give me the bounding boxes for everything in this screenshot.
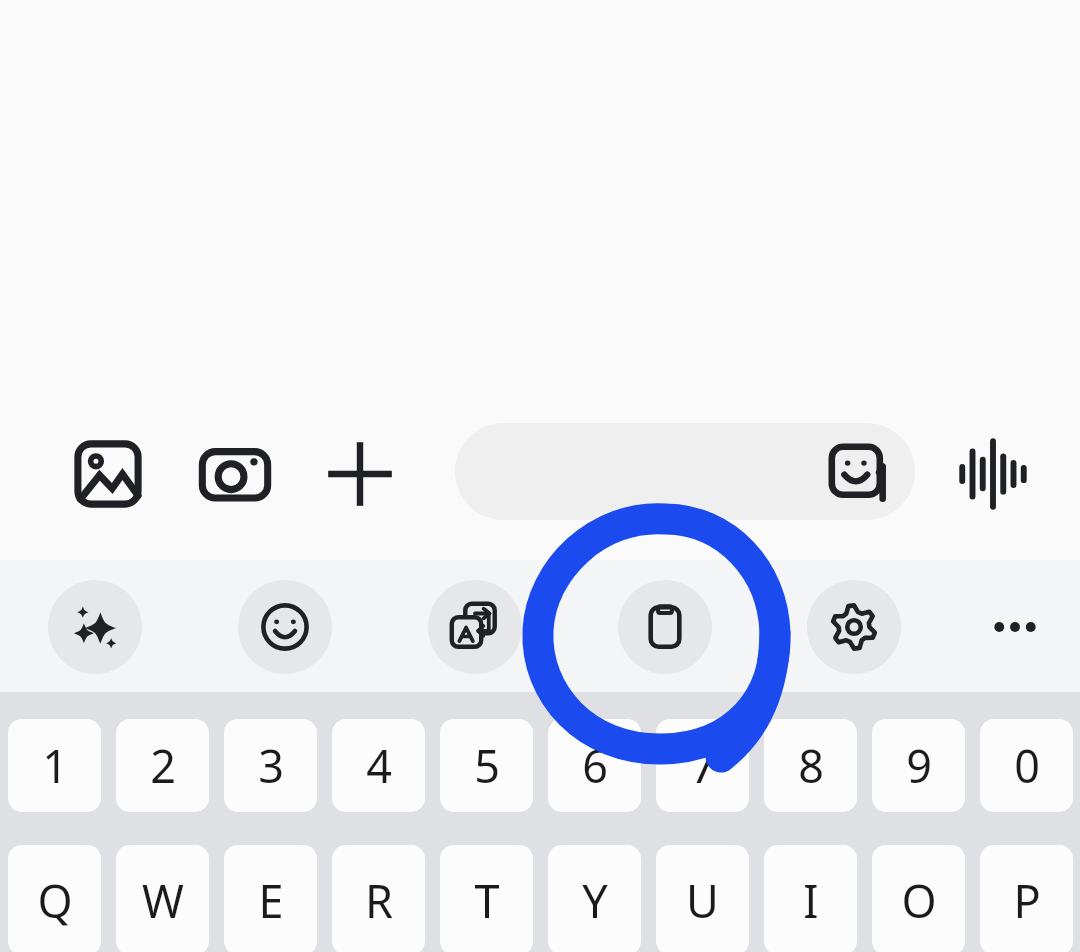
staticText: 9 <box>906 735 932 796</box>
button[interactable]: U <box>656 845 749 952</box>
button[interactable]: O <box>872 845 965 952</box>
button[interactable]: 2 <box>116 719 209 812</box>
button[interactable]: Settings <box>807 580 901 674</box>
button[interactable]: AI suggestions <box>48 580 142 674</box>
staticText: 6 <box>582 735 608 796</box>
button[interactable]: 9 <box>872 719 965 812</box>
staticText: I <box>803 870 819 931</box>
button[interactable]: Emoji <box>238 580 332 674</box>
staticText: 5 <box>474 735 500 796</box>
button[interactable]: T <box>440 845 533 952</box>
staticText: Q <box>37 870 73 931</box>
staticText: T <box>474 870 500 931</box>
button[interactable]: 3 <box>224 719 317 812</box>
button[interactable]: Translate <box>428 580 522 674</box>
button[interactable]: More options <box>970 582 1060 672</box>
button[interactable]: 7 <box>656 719 749 812</box>
button[interactable] <box>455 423 915 520</box>
button[interactable]: Clipboard <box>618 580 712 674</box>
button[interactable]: R <box>332 845 425 952</box>
button[interactable]: Add attachment <box>317 431 403 517</box>
button[interactable]: Y <box>548 845 641 952</box>
staticText: O <box>901 870 937 931</box>
staticText: 2 <box>150 735 176 796</box>
button[interactable]: Camera <box>192 431 278 517</box>
button[interactable]: Voice message <box>952 433 1034 515</box>
button[interactable]: 6 <box>548 719 641 812</box>
button[interactable]: 5 <box>440 719 533 812</box>
button[interactable]: Gallery <box>65 431 151 517</box>
staticText: W <box>142 870 184 931</box>
staticText: 0 <box>1014 735 1040 796</box>
staticText: Y <box>582 870 608 931</box>
button[interactable]: 0 <box>980 719 1073 812</box>
button[interactable]: 1 <box>8 719 101 812</box>
staticText: R <box>365 870 393 931</box>
staticText: P <box>1013 870 1041 931</box>
button[interactable]: I <box>764 845 857 952</box>
staticText: 4 <box>366 735 392 796</box>
staticText: U <box>686 870 719 931</box>
button[interactable]: P <box>980 845 1073 952</box>
button[interactable]: Q <box>8 845 101 952</box>
staticText: 8 <box>798 735 824 796</box>
staticText: 1 <box>42 735 68 796</box>
staticText: 7 <box>690 735 716 796</box>
staticText: 3 <box>258 735 284 796</box>
staticText: E <box>258 870 284 931</box>
button[interactable]: W <box>116 845 209 952</box>
button[interactable]: Stickers <box>819 434 899 514</box>
button[interactable]: 4 <box>332 719 425 812</box>
button[interactable]: 8 <box>764 719 857 812</box>
button[interactable]: E <box>224 845 317 952</box>
